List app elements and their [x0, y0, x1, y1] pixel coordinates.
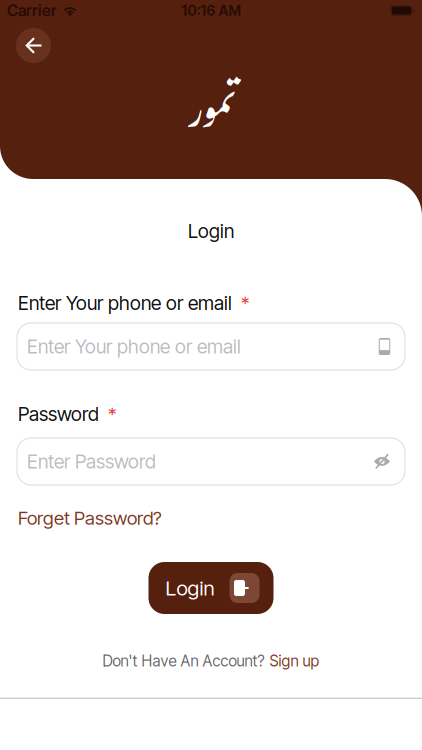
staticText: Password: [18, 402, 99, 426]
staticText: Carrier: [7, 1, 57, 20]
staticText: Enter Your phone or email: [27, 335, 241, 358]
staticText: تمور: [185, 59, 237, 181]
staticText: Enter Password: [27, 450, 156, 473]
staticText: Don't Have An Account?: [102, 652, 264, 670]
staticText: *: [241, 292, 249, 314]
button[interactable]: Sign up: [269, 652, 319, 670]
staticText: Enter Your phone or email: [18, 291, 232, 315]
button[interactable]: Forget Password?: [18, 507, 162, 529]
staticText: 10:16 AM: [181, 2, 240, 19]
staticText: Login: [165, 576, 214, 600]
staticText: Login: [188, 219, 234, 243]
button[interactable]: Back: [16, 28, 51, 63]
button[interactable]: Login: [148, 562, 273, 614]
staticText: *: [108, 403, 116, 425]
staticText: Sign up: [269, 652, 319, 670]
staticText: Forget Password?: [18, 507, 162, 529]
